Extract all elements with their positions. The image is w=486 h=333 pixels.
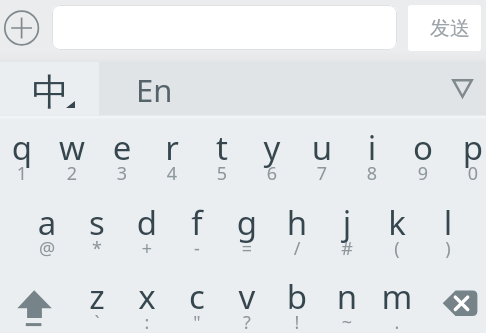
staticText: 发送 (430, 16, 470, 41)
button[interactable]: w (47, 118, 97, 193)
staticText: a (22, 200, 72, 245)
button[interactable]: i (347, 118, 397, 193)
staticText: j (322, 200, 372, 245)
staticText: p (448, 125, 486, 170)
button[interactable]: p (448, 118, 486, 193)
staticText: 7 (297, 161, 347, 186)
staticText: x (122, 274, 172, 319)
staticText: ` (72, 310, 122, 333)
staticText: r (147, 125, 197, 170)
staticText: h (272, 200, 322, 245)
button[interactable]: En (99, 62, 219, 115)
staticText: ( (372, 236, 422, 261)
button[interactable]: Keyboard options (444, 70, 480, 106)
staticText: : (122, 310, 172, 333)
staticText: w (47, 125, 97, 170)
staticText: k (372, 200, 422, 245)
staticText: n (322, 274, 372, 319)
staticText: . (372, 310, 422, 333)
staticText: ) (423, 236, 473, 261)
staticText: t (197, 125, 247, 170)
staticText: y (247, 125, 297, 170)
staticText: En (136, 69, 173, 111)
button[interactable]: Backspace (432, 267, 486, 333)
staticText: f (172, 200, 222, 245)
staticText: o (398, 125, 448, 170)
button[interactable]: c (172, 267, 222, 333)
button[interactable] (52, 5, 397, 50)
button[interactable]: 发送 (408, 5, 481, 51)
staticText: * (72, 236, 122, 261)
staticText: d (122, 200, 172, 245)
staticText: 4 (147, 161, 197, 186)
staticText: u (297, 125, 347, 170)
staticText: g (222, 200, 272, 245)
button[interactable]: g (222, 193, 272, 268)
button[interactable]: Add (3, 9, 41, 47)
staticText: ! (272, 310, 322, 333)
button[interactable]: h (272, 193, 322, 268)
button[interactable]: s (72, 193, 122, 268)
staticText: @ (22, 236, 72, 261)
button[interactable]: z (72, 267, 122, 333)
staticText: 9 (398, 161, 448, 186)
button[interactable]: b (272, 267, 322, 333)
button[interactable]: o (398, 118, 448, 193)
staticText: b (272, 274, 322, 319)
staticText: v (222, 274, 272, 319)
staticText: l (423, 200, 473, 245)
staticText: 5 (197, 161, 247, 186)
staticText: 3 (97, 161, 147, 186)
button[interactable]: y (247, 118, 297, 193)
staticText: " (172, 310, 222, 333)
button[interactable]: e (97, 118, 147, 193)
staticText: # (322, 236, 372, 261)
staticText: / (272, 236, 322, 261)
button[interactable]: u (297, 118, 347, 193)
staticText: = (222, 236, 272, 261)
staticText: 中 (32, 69, 69, 116)
staticText: + (122, 236, 172, 261)
button[interactable]: f (172, 193, 222, 268)
button[interactable]: 中 (0, 62, 99, 115)
button[interactable]: a (22, 193, 72, 268)
staticText: - (172, 236, 222, 261)
staticText: ~ (322, 310, 372, 333)
button[interactable]: j (322, 193, 372, 268)
staticText: 0 (448, 161, 486, 186)
button[interactable]: q (0, 118, 47, 193)
staticText: 2 (47, 161, 97, 186)
staticText: i (347, 125, 397, 170)
button[interactable]: x (122, 267, 172, 333)
button[interactable]: t (197, 118, 247, 193)
button[interactable]: v (222, 267, 272, 333)
button[interactable]: l (423, 193, 473, 268)
staticText: c (172, 274, 222, 319)
staticText: ? (222, 310, 272, 333)
button[interactable]: k (372, 193, 422, 268)
staticText: q (0, 125, 47, 170)
staticText: 1 (0, 161, 47, 186)
staticText: z (72, 274, 122, 319)
button[interactable]: n (322, 267, 372, 333)
button[interactable]: d (122, 193, 172, 268)
staticText: 8 (347, 161, 397, 186)
button[interactable]: Shift (0, 267, 71, 333)
staticText: s (72, 200, 122, 245)
button[interactable]: r (147, 118, 197, 193)
staticText: e (97, 125, 147, 170)
staticText: m (372, 274, 422, 319)
staticText: 6 (247, 161, 297, 186)
button[interactable]: m (372, 267, 422, 333)
